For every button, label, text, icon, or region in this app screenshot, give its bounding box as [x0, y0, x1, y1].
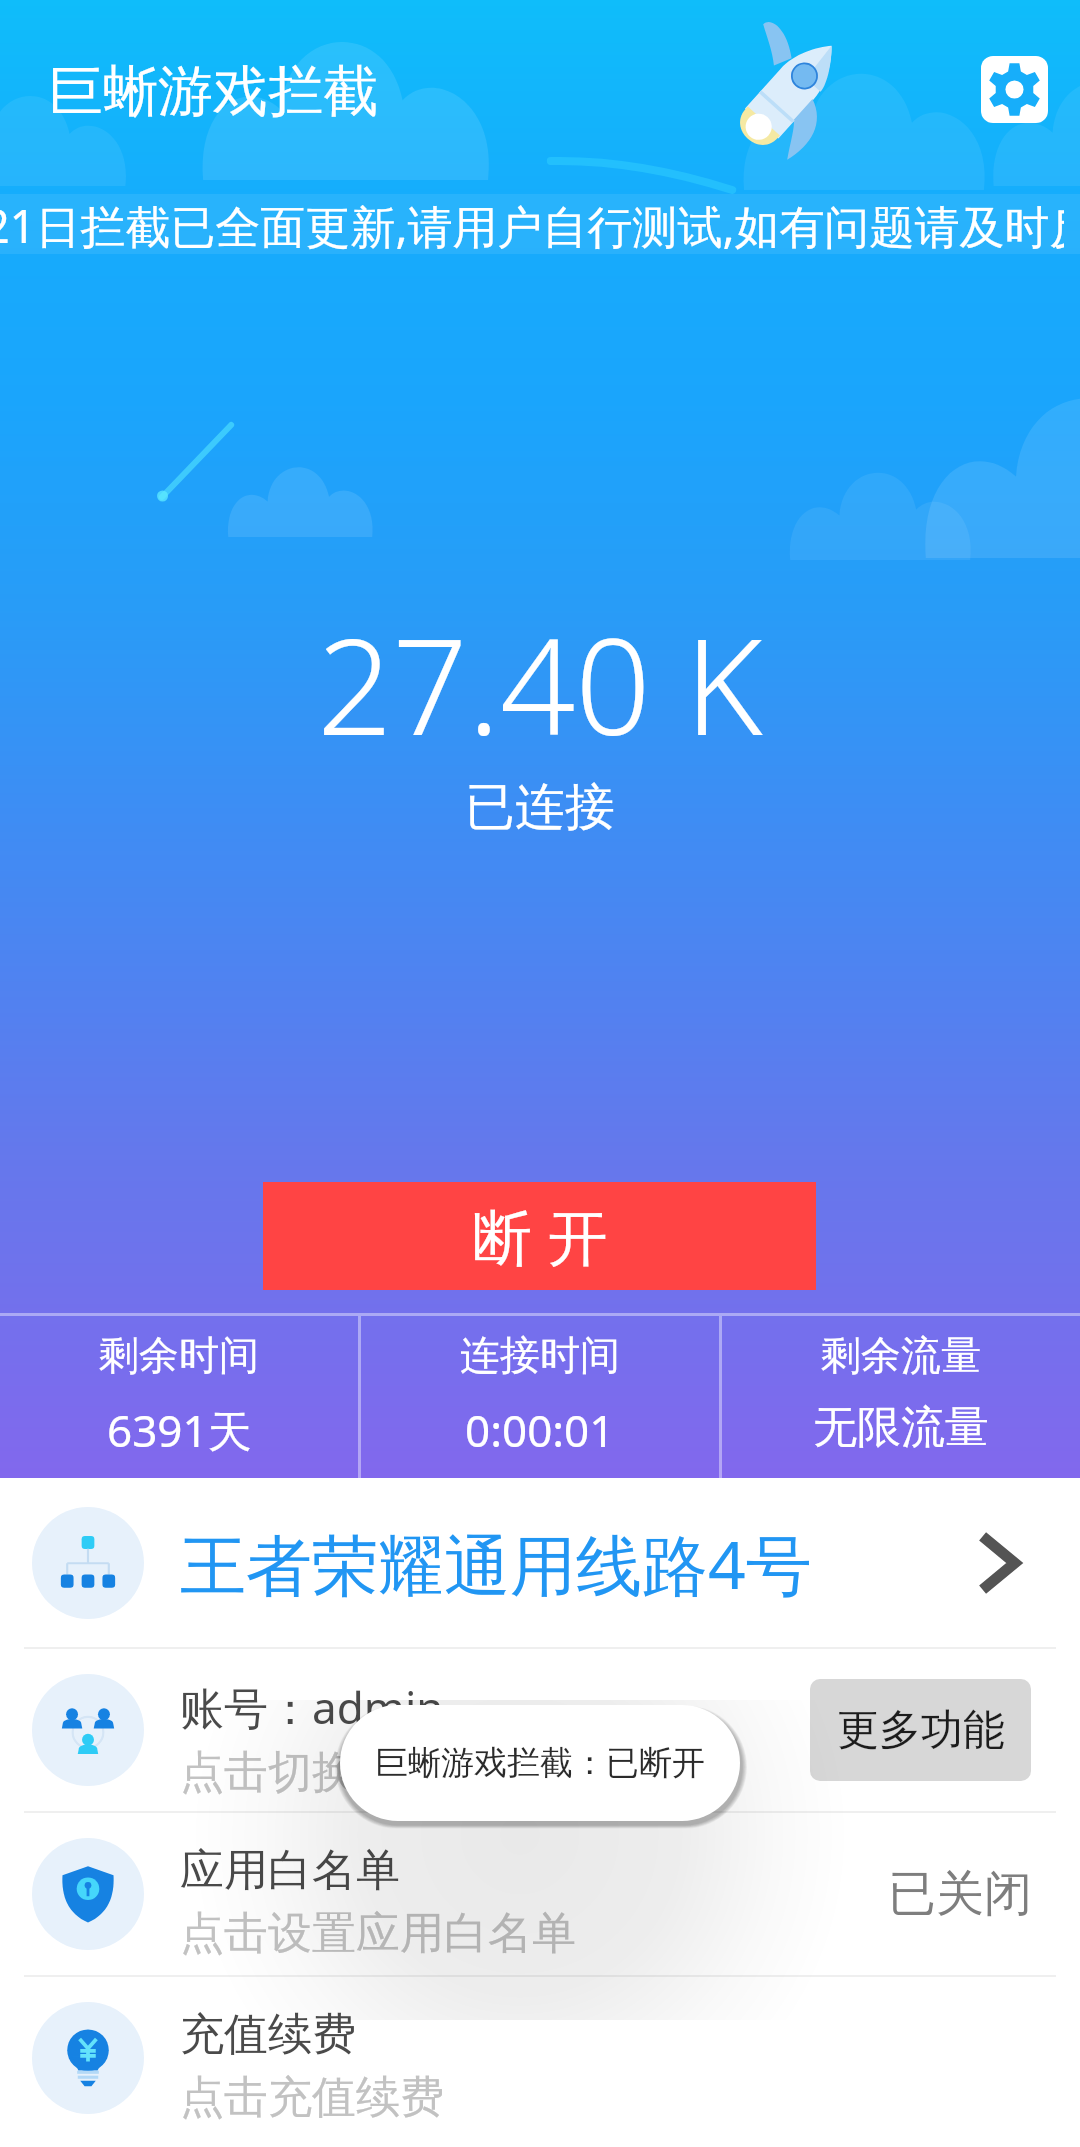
staticText: 点击充值续费 — [180, 2070, 444, 2125]
staticText: 点击切换账号 — [180, 1745, 444, 1800]
staticText: 应用白名单 — [180, 1843, 400, 1898]
button[interactable]: 充值续费 — [0, 1977, 1080, 2139]
staticText: 无限流量 — [813, 1400, 989, 1455]
staticText: 27.40 K — [317, 594, 763, 774]
staticText: 连接时间 — [460, 1330, 620, 1380]
staticText: 巨蜥游戏拦截：已断开 — [375, 1742, 705, 1784]
button[interactable]: 王者荣耀通用线路4号 — [0, 1478, 1080, 1647]
staticText: 21日拦截已全面更新,请用户自行测试,如有问题请及时反馈 — [0, 195, 1064, 256]
button[interactable]: 断 开 — [263, 1182, 816, 1290]
staticText: 已连接 — [465, 776, 615, 839]
button[interactable]: 应用白名单 — [0, 1813, 1080, 1975]
staticText: 更多功能 — [837, 1704, 1005, 1757]
staticText: 6391天 — [107, 1400, 252, 1460]
button[interactable]: 账号：admin — [0, 1649, 1080, 1811]
staticText: 点击设置应用白名单 — [180, 1906, 576, 1961]
button[interactable]: Open route list — [960, 1525, 1036, 1601]
button[interactable]: 更多功能 — [810, 1679, 1031, 1781]
button[interactable]: Settings — [948, 39, 1048, 139]
staticText: 断 开 — [472, 1195, 608, 1277]
staticText: 已关闭 — [888, 1864, 1032, 1924]
staticText: 账号：admin — [180, 1677, 444, 1737]
staticText: 王者荣耀通用线路4号 — [180, 1518, 812, 1608]
staticText: 0:00:01 — [465, 1400, 615, 1460]
staticText: 剩余流量 — [821, 1330, 981, 1380]
staticText: 巨蜥游戏拦截 — [48, 57, 378, 126]
staticText: 充值续费 — [180, 2007, 356, 2062]
staticText: 剩余时间 — [99, 1330, 259, 1380]
